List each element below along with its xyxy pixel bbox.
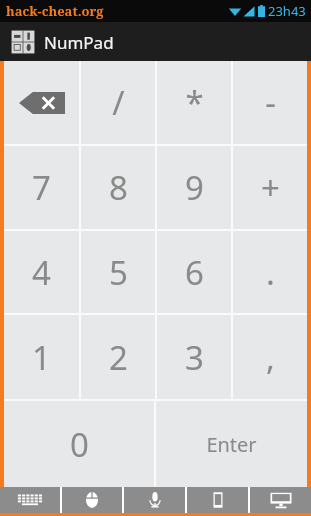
button[interactable]: + bbox=[233, 146, 307, 229]
staticText: 8 bbox=[109, 165, 128, 210]
button[interactable]: 7 bbox=[4, 146, 79, 229]
button[interactable]: Mouse bbox=[62, 487, 122, 513]
button[interactable]: 3 bbox=[157, 315, 231, 399]
staticText: 23h43 bbox=[268, 2, 306, 20]
button[interactable]: 9 bbox=[157, 146, 231, 229]
staticText: 3 bbox=[185, 335, 204, 380]
staticText: . bbox=[266, 250, 275, 295]
button[interactable]: Enter bbox=[156, 401, 307, 487]
button[interactable]: Microphone bbox=[124, 487, 185, 513]
staticText: 1 bbox=[32, 335, 51, 380]
staticText: 5 bbox=[109, 250, 128, 295]
staticText: Enter bbox=[206, 431, 257, 458]
staticText: 0 bbox=[70, 422, 89, 467]
button[interactable]: Monitor bbox=[250, 487, 311, 513]
staticText: 6 bbox=[185, 250, 204, 295]
staticText: NumPad bbox=[44, 31, 114, 54]
staticText: * bbox=[185, 80, 204, 125]
button[interactable]: 0 bbox=[4, 401, 154, 487]
staticText: + bbox=[261, 165, 280, 210]
button[interactable]: Backspace bbox=[4, 61, 79, 144]
button[interactable]: . bbox=[233, 231, 307, 313]
button[interactable]: 8 bbox=[81, 146, 155, 229]
staticText: hack-cheat.org bbox=[6, 2, 104, 20]
button[interactable]: / bbox=[81, 61, 155, 144]
button[interactable]: 1 bbox=[4, 315, 79, 399]
button[interactable]: Keyboard bbox=[0, 487, 60, 513]
staticText: - bbox=[265, 80, 276, 125]
button[interactable]: Phone bbox=[187, 487, 248, 513]
staticText: / bbox=[112, 80, 125, 125]
button[interactable]: 2 bbox=[81, 315, 155, 399]
staticText: 4 bbox=[32, 250, 51, 295]
button[interactable]: - bbox=[233, 61, 307, 144]
button[interactable]: 6 bbox=[157, 231, 231, 313]
staticText: 2 bbox=[109, 335, 128, 380]
staticText: 9 bbox=[185, 165, 204, 210]
staticText: , bbox=[266, 335, 275, 380]
button[interactable]: 4 bbox=[4, 231, 79, 313]
button[interactable]: 5 bbox=[81, 231, 155, 313]
button[interactable]: , bbox=[233, 315, 307, 399]
staticText: 7 bbox=[32, 165, 51, 210]
button[interactable]: * bbox=[157, 61, 231, 144]
